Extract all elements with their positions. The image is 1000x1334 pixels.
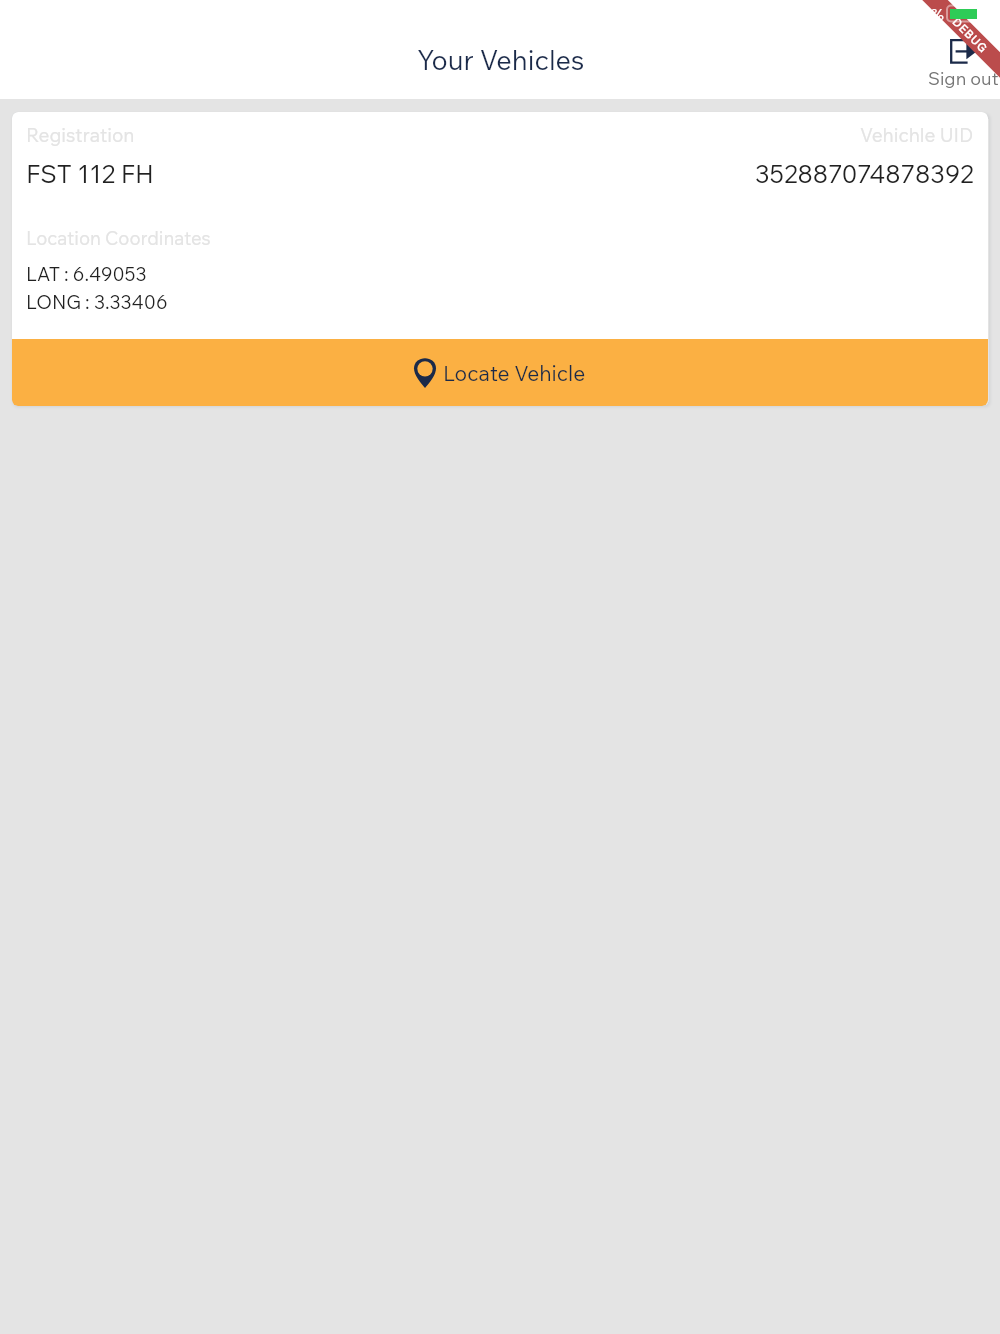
staticText: Sign out (928, 67, 999, 90)
staticText: LONG : 3.33406 (26, 290, 168, 314)
staticText: Locate Vehicle (443, 360, 586, 386)
button[interactable]: Locate Vehicle (12, 339, 988, 406)
button[interactable]: Sign out (928, 39, 999, 90)
staticText: 0% (921, 4, 944, 24)
staticText: LAT : 6.49053 (26, 262, 147, 286)
staticText: DEBUG (950, 15, 991, 56)
staticText: Registration (26, 123, 135, 147)
staticText: Your Vehicles (417, 43, 585, 77)
staticText: Vehichle UID (860, 123, 974, 147)
staticText: Location Coordinates (26, 226, 211, 249)
staticText: 352887074878392 (755, 158, 974, 190)
staticText: FST 112 FH (26, 158, 154, 190)
